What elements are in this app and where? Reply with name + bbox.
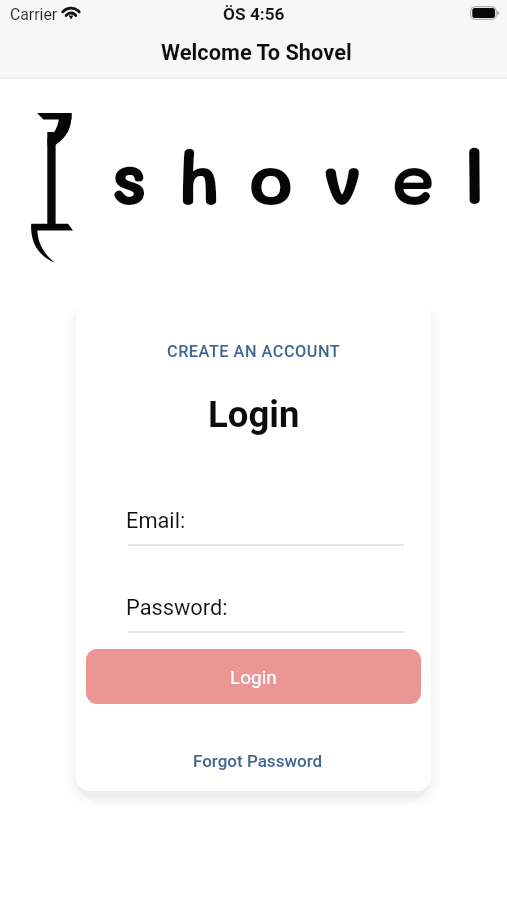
button[interactable]: Login bbox=[86, 649, 421, 704]
staticText: Password: bbox=[126, 595, 228, 621]
other: Shovel logo bbox=[28, 106, 80, 270]
staticText: Welcome To Shovel bbox=[161, 40, 352, 66]
other: Battery full bbox=[470, 6, 500, 20]
staticText: CREATE AN ACCOUNT bbox=[167, 342, 341, 361]
staticText: Login bbox=[230, 666, 277, 688]
staticText: Forgot Password bbox=[193, 751, 323, 771]
staticText: shovel bbox=[111, 129, 507, 223]
staticText: Login bbox=[208, 393, 300, 436]
button[interactable]: CREATE AN ACCOUNT bbox=[157, 338, 351, 365]
button[interactable]: Forgot Password bbox=[183, 748, 333, 774]
staticText: Carrier bbox=[10, 5, 58, 24]
staticText: Email: bbox=[126, 508, 186, 534]
staticText: ÖS 4:56 bbox=[223, 4, 285, 24]
